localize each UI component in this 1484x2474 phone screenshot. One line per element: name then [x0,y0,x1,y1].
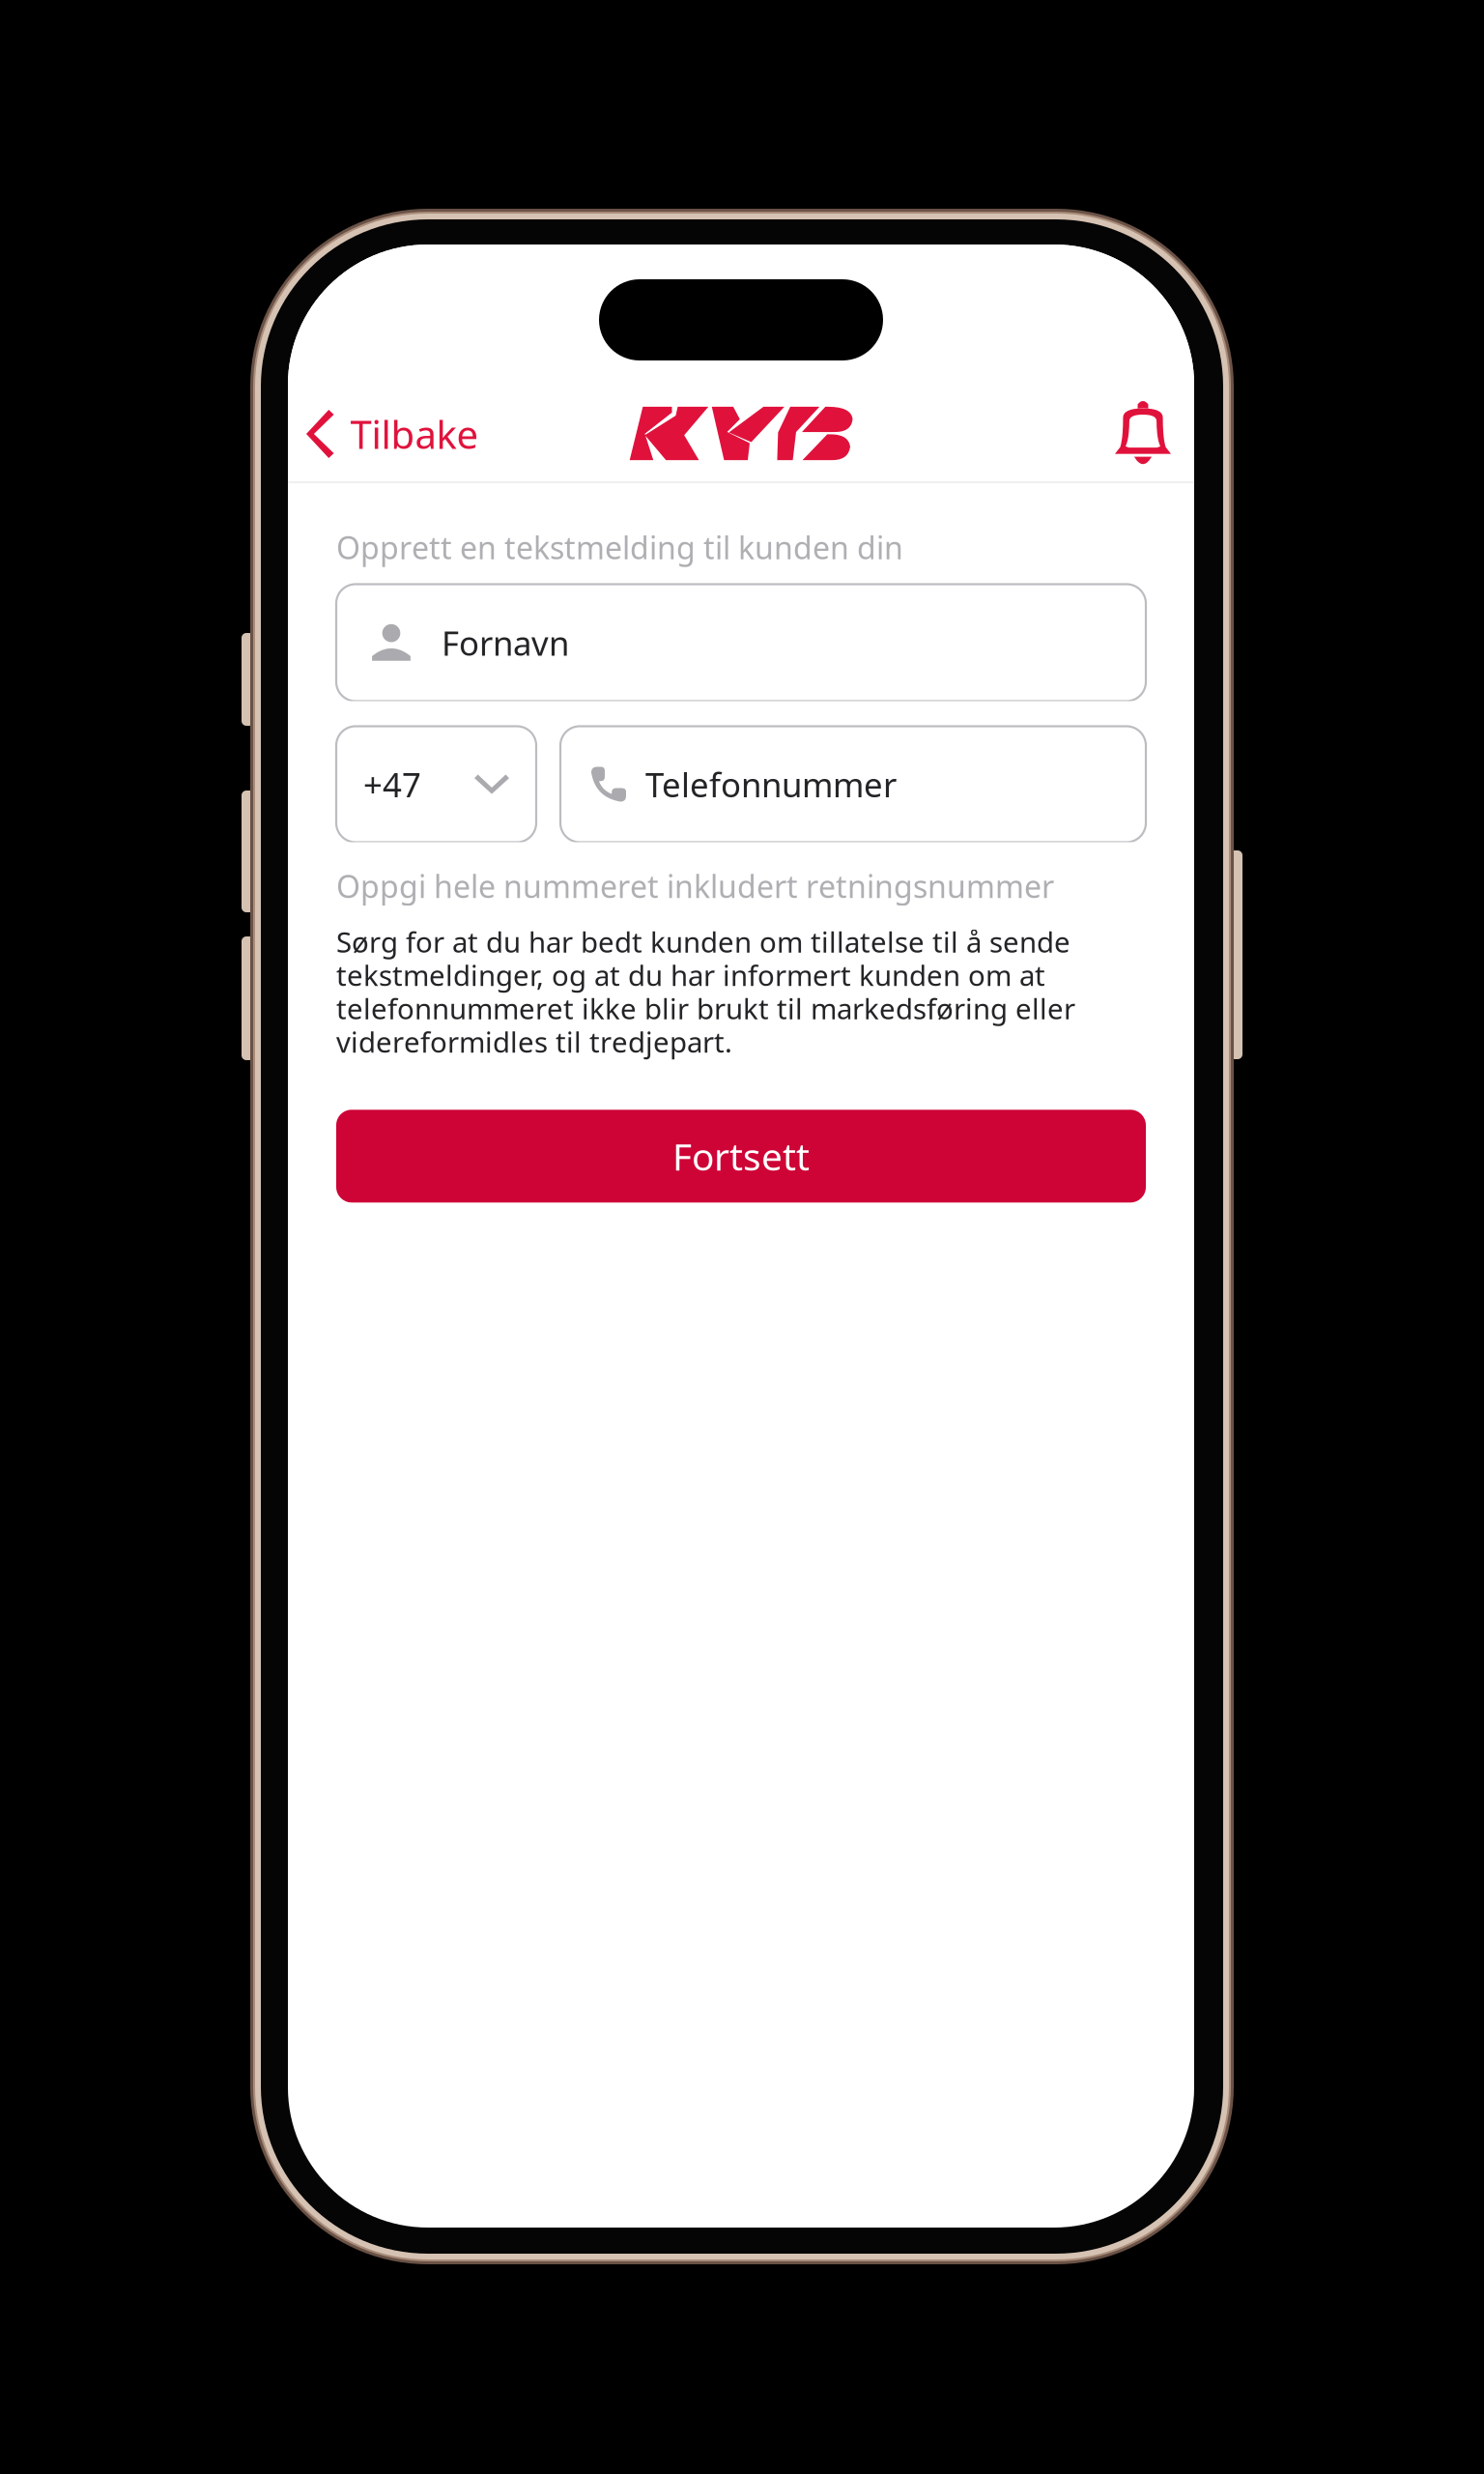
staticText: +47 [363,762,421,806]
staticText: Tilbake [350,408,479,460]
button[interactable]: Fortsett [336,1110,1146,1202]
staticText: Opprett en tekstmelding til kunden din [336,527,903,568]
button[interactable]: +47 [336,726,536,842]
button[interactable]: Tilbake [288,397,494,471]
staticText: Fornavn [442,620,569,665]
staticText: Oppgi hele nummeret inkludert retningsnu… [336,865,1054,906]
staticText: Telefonnummer [645,762,897,806]
button[interactable]: Notifications [1092,391,1194,477]
staticText: Fortsett [672,1131,810,1181]
staticText: Sørg for at du har bedt kunden om tillat… [336,923,1075,1060]
